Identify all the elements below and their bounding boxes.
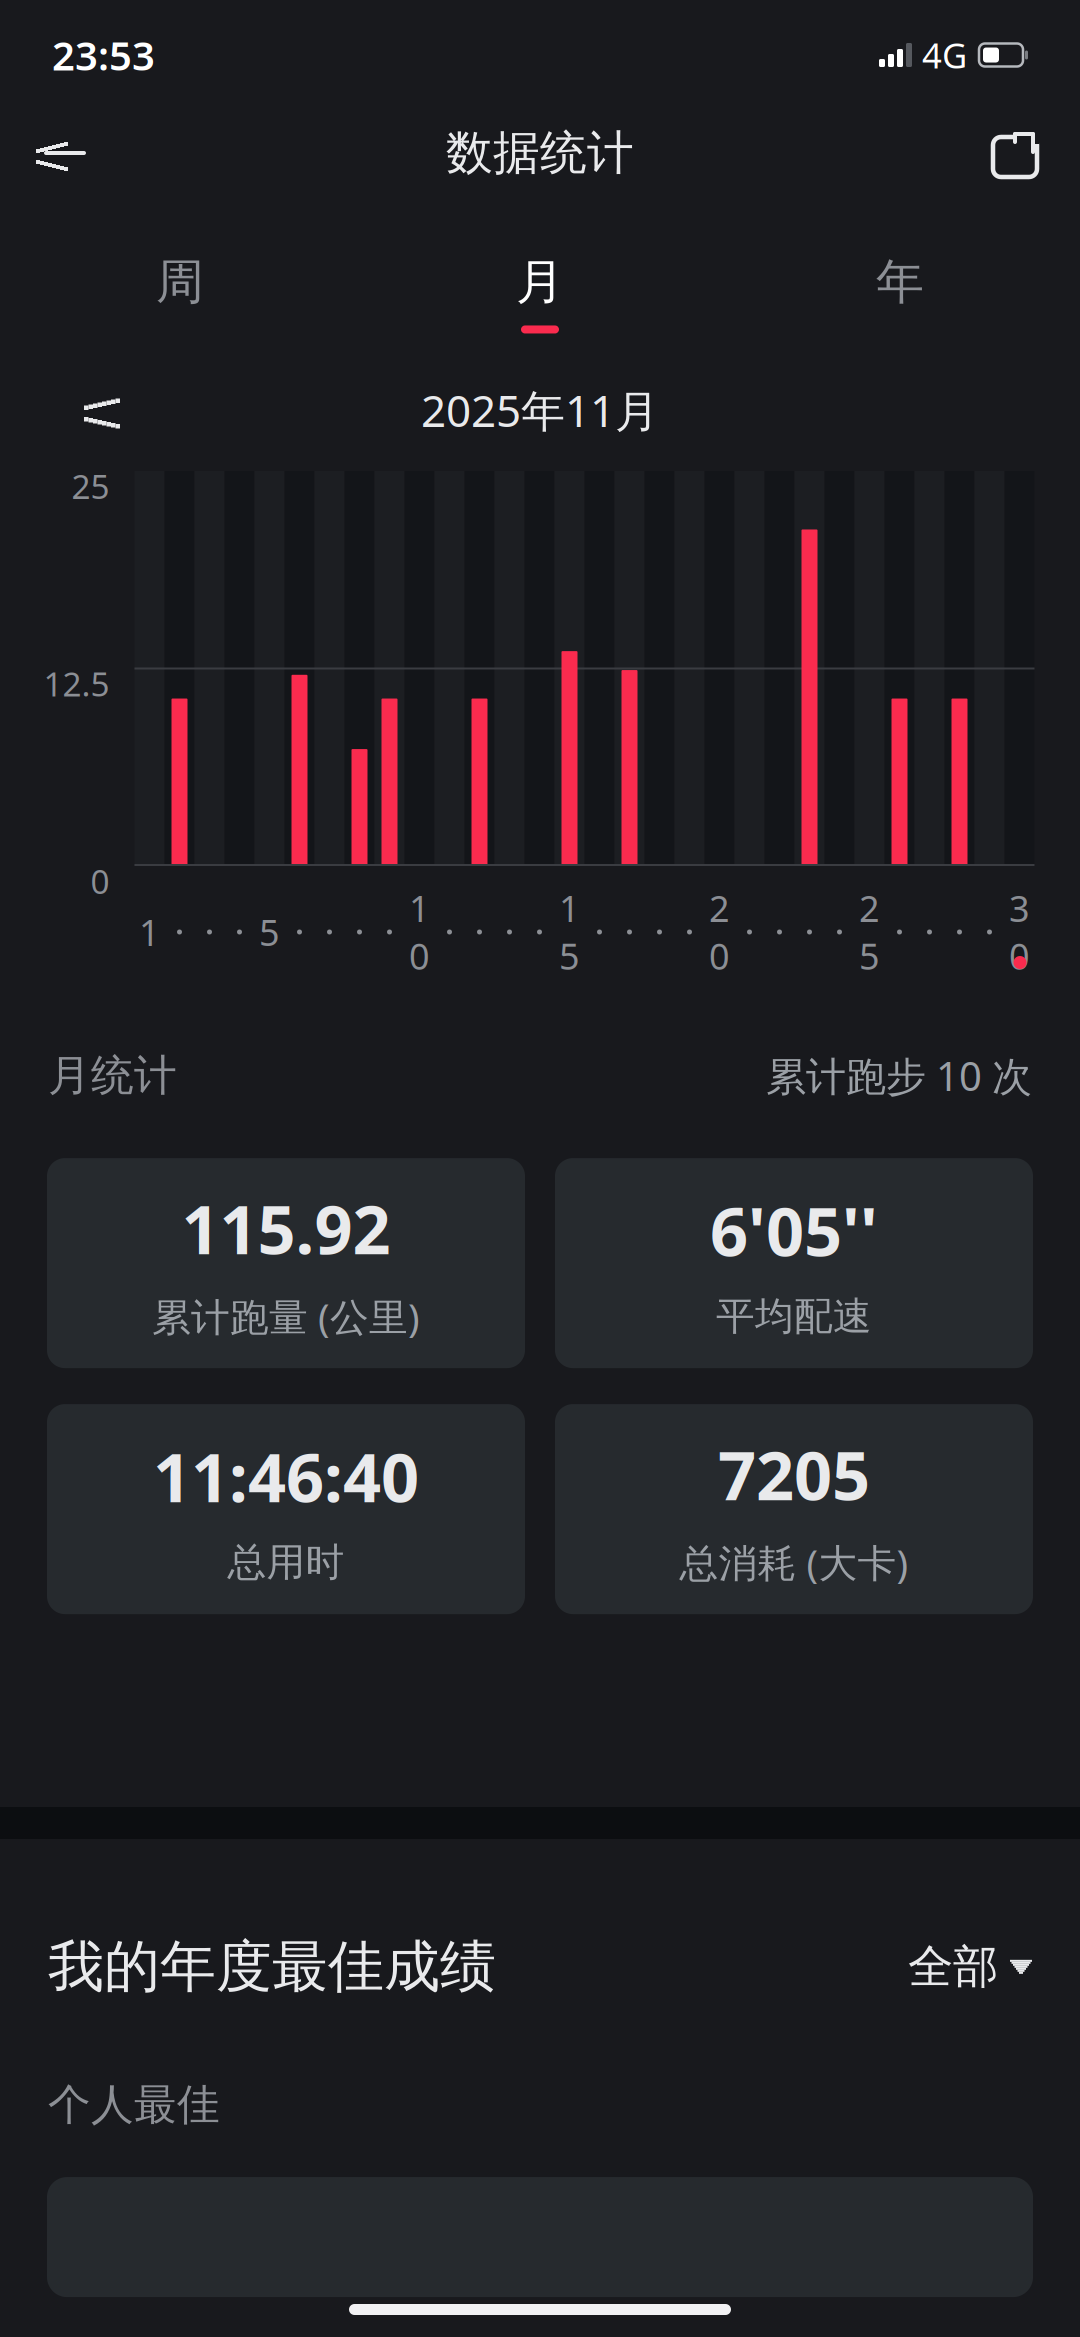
staticText: 15 bbox=[559, 884, 580, 980]
staticText: 10 bbox=[409, 884, 430, 980]
staticText: 累计跑量 (公里) bbox=[152, 1291, 420, 1342]
button[interactable]: 6'05'' bbox=[555, 1158, 1033, 1368]
button[interactable]: 分享 bbox=[972, 110, 1058, 196]
staticText: 20 bbox=[709, 884, 730, 980]
staticText: 个人最佳 bbox=[48, 2079, 220, 2131]
staticText: 0 bbox=[90, 859, 109, 903]
staticText: 1 bbox=[139, 908, 160, 956]
staticText: 12.5 bbox=[43, 661, 109, 706]
staticText: 25 bbox=[859, 884, 880, 980]
button[interactable]: 返回 bbox=[22, 110, 108, 196]
staticText: 总用时 bbox=[227, 1539, 344, 1586]
button[interactable]: 上个月 bbox=[62, 370, 142, 450]
button[interactable]: 115.92 bbox=[47, 1158, 525, 1368]
button[interactable]: 7205 bbox=[555, 1404, 1033, 1614]
staticText: 我的年度最佳成绩 bbox=[48, 1932, 496, 2001]
staticText: 年 bbox=[876, 252, 924, 311]
staticText: 5 bbox=[259, 908, 280, 956]
staticText: 6'05'' bbox=[710, 1186, 878, 1275]
staticText: 全部 bbox=[908, 1939, 998, 1995]
staticText: 周 bbox=[156, 252, 204, 311]
staticText: 23:53 bbox=[52, 28, 155, 81]
button[interactable]: 11:46:40 bbox=[47, 1404, 525, 1614]
staticText: 累计跑步 10 次 bbox=[766, 1049, 1032, 1102]
staticText: 月统计 bbox=[48, 1049, 177, 1102]
staticText: 25 bbox=[71, 464, 109, 508]
staticText: 4G bbox=[922, 32, 967, 78]
staticText: 115.92 bbox=[181, 1184, 390, 1273]
staticText: 7205 bbox=[718, 1430, 870, 1519]
button[interactable]: 全部 bbox=[908, 1927, 1032, 2007]
button[interactable]: 月 bbox=[360, 228, 720, 358]
staticText: 11:46:40 bbox=[153, 1432, 419, 1521]
staticText: 2025年11月 bbox=[421, 381, 659, 439]
button[interactable]: 周 bbox=[0, 228, 360, 358]
staticText: 数据统计 bbox=[446, 124, 634, 182]
staticText: 总消耗 (大卡) bbox=[679, 1537, 908, 1588]
staticText: 30 bbox=[1009, 884, 1030, 980]
staticText: 平均配速 bbox=[716, 1293, 872, 1340]
button[interactable]: 年 bbox=[720, 228, 1080, 358]
staticText: 月 bbox=[516, 252, 564, 311]
